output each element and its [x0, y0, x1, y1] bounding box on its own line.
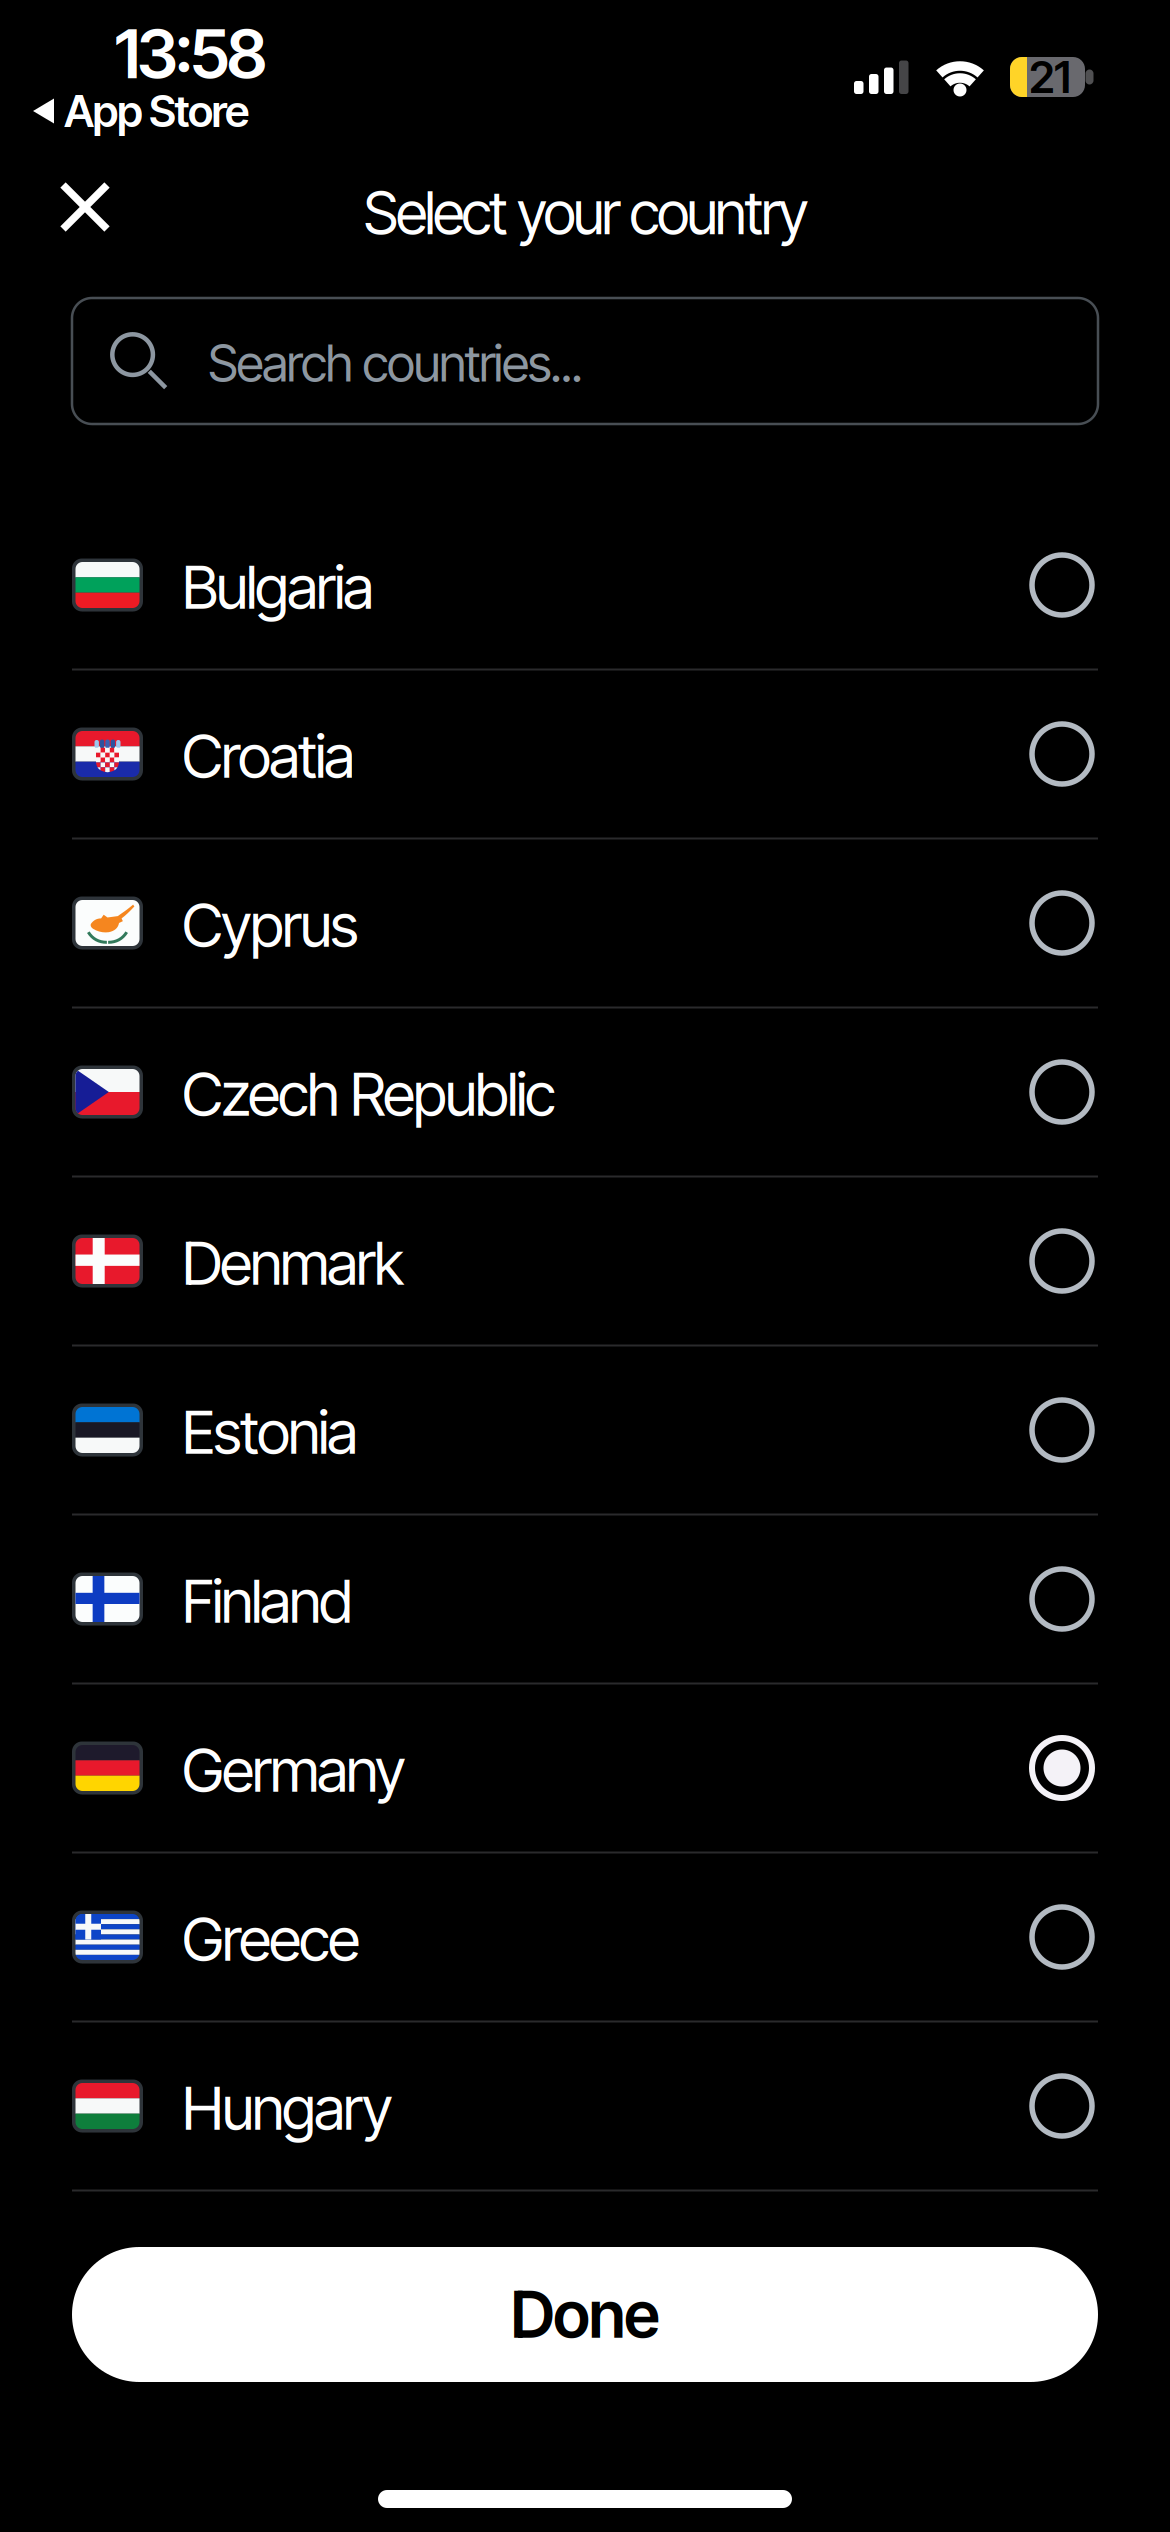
- button[interactable]: Close: [51, 173, 119, 241]
- button[interactable]: Done: [72, 2247, 1098, 2382]
- button[interactable]: Hungary: [72, 2021, 1098, 2190]
- button[interactable]: Germany: [72, 1683, 1098, 1852]
- staticText: App Store: [64, 84, 249, 138]
- button[interactable]: Bulgaria: [72, 500, 1098, 669]
- button[interactable]: Cyprus: [72, 838, 1098, 1007]
- button[interactable]: Denmark: [72, 1176, 1098, 1345]
- staticText: Denmark: [182, 1227, 404, 1299]
- staticText: 13:58: [114, 14, 267, 94]
- button[interactable]: Back to App Store: [33, 84, 249, 138]
- button[interactable]: Czech Republic: [72, 1007, 1098, 1176]
- staticText: Croatia: [182, 720, 355, 792]
- button[interactable]: Croatia: [72, 669, 1098, 838]
- staticText: Czech Republic: [182, 1058, 556, 1130]
- button[interactable]: Finland: [72, 1514, 1098, 1683]
- staticText: Hungary: [182, 2072, 393, 2144]
- staticText: 21: [1029, 50, 1071, 104]
- staticText: Finland: [182, 1565, 353, 1637]
- staticText: Select your country: [363, 177, 808, 248]
- button[interactable]: Search countries: [72, 298, 1098, 424]
- staticText: Search countries...: [208, 332, 583, 394]
- staticText: Estonia: [182, 1396, 358, 1468]
- button[interactable]: Estonia: [72, 1345, 1098, 1514]
- staticText: Greece: [182, 1903, 360, 1975]
- staticText: Bulgaria: [182, 551, 374, 623]
- staticText: Done: [511, 2276, 659, 2353]
- staticText: Cyprus: [182, 889, 359, 961]
- button[interactable]: Greece: [72, 1852, 1098, 2021]
- staticText: Germany: [182, 1734, 406, 1806]
